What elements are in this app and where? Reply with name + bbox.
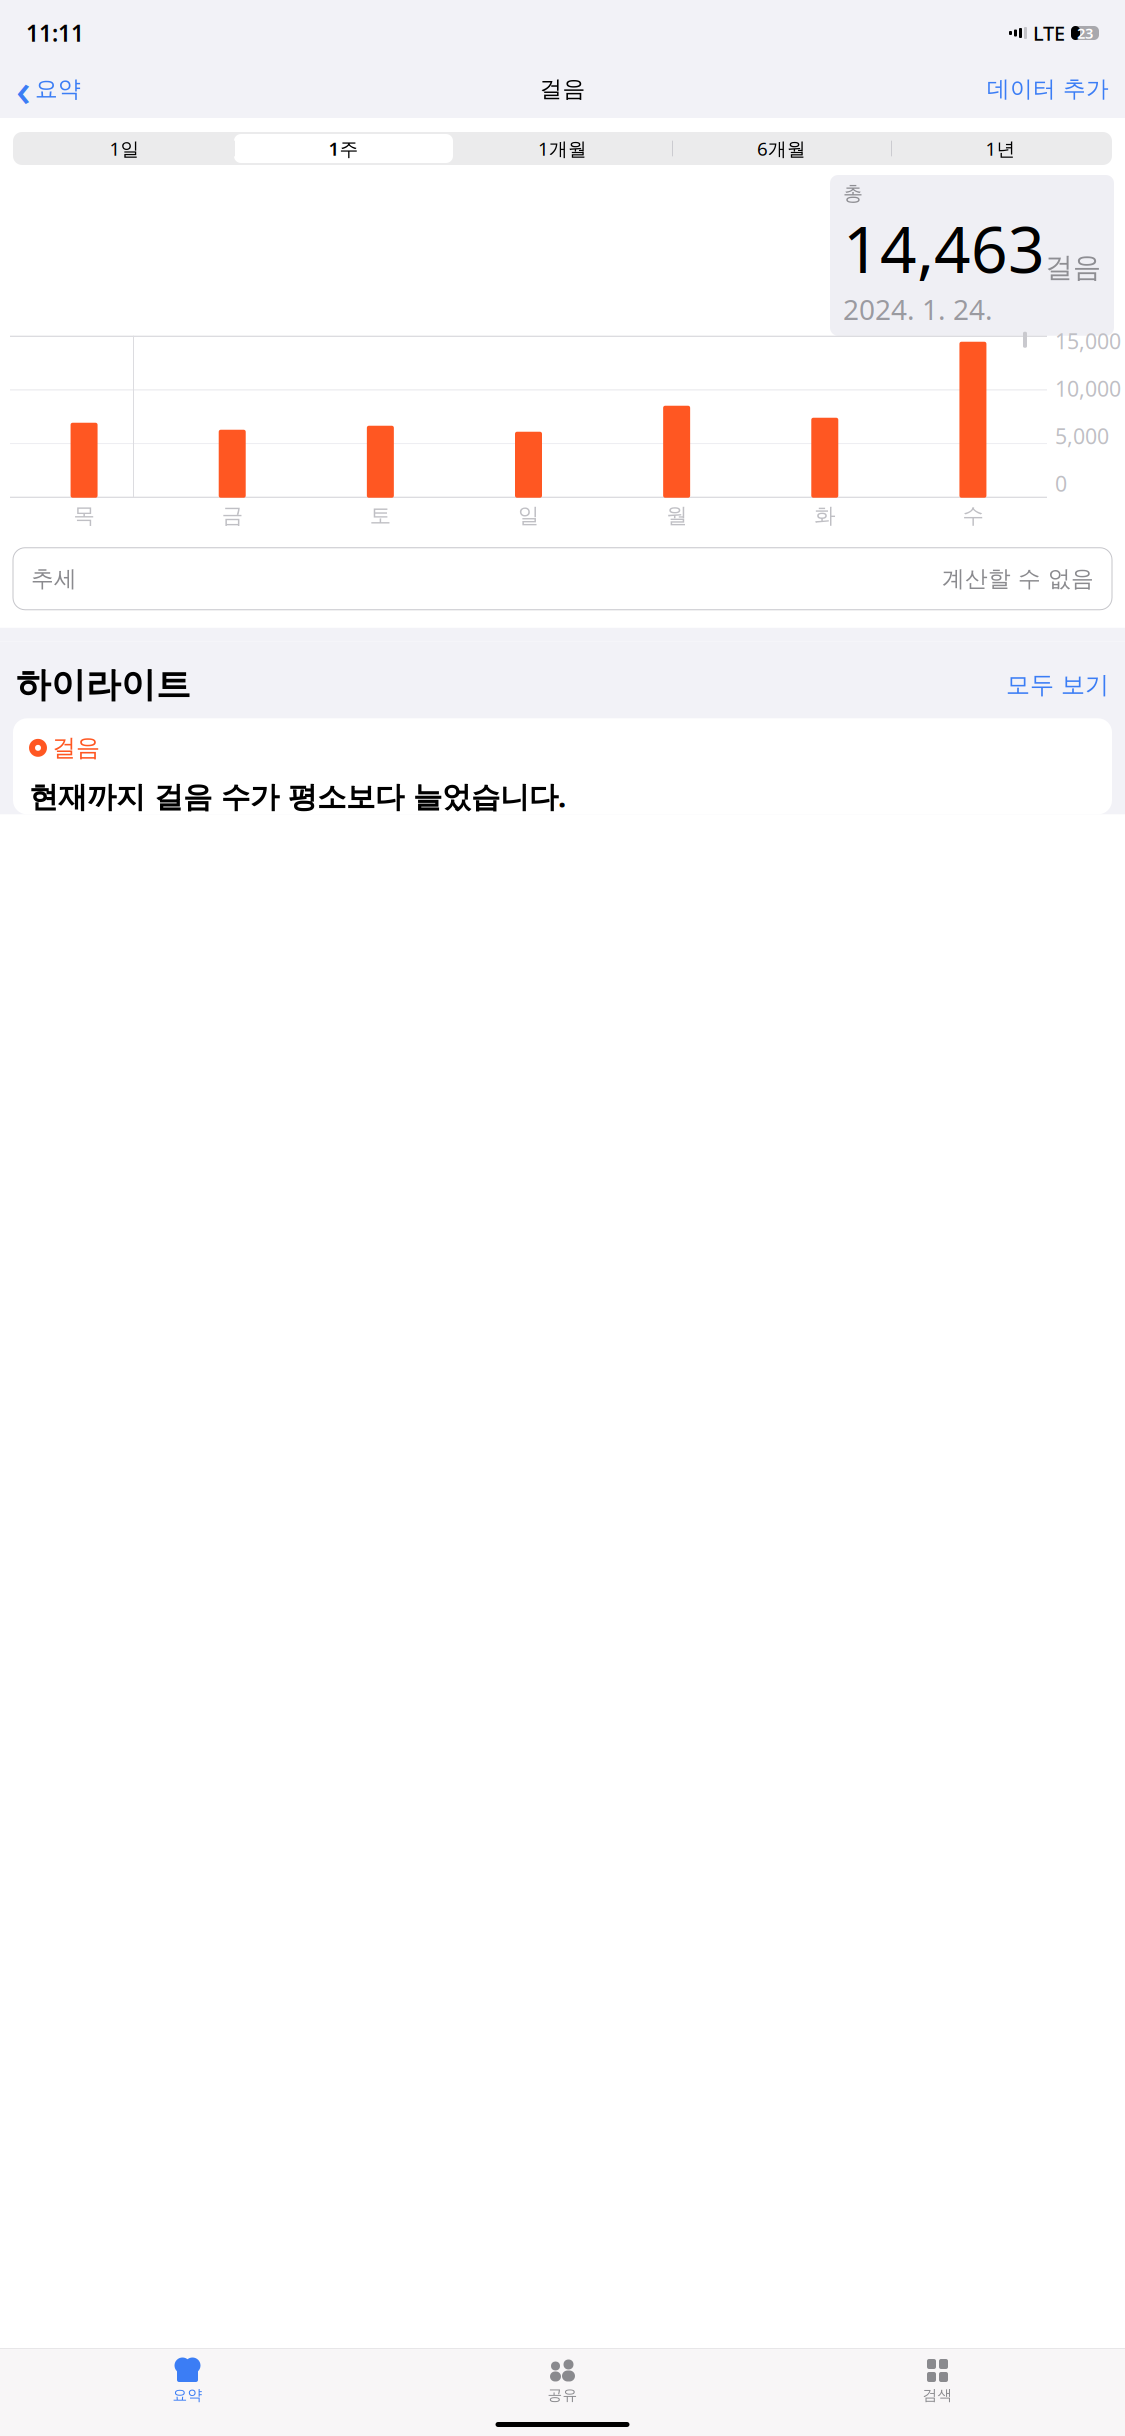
staticText: ‹ [16,59,31,119]
staticText: 1년 [985,136,1015,161]
staticText: 수 [962,503,983,529]
button[interactable]: 데이터 추가 [979,71,1117,107]
staticText: 0 [1055,469,1067,498]
staticText: 10,000 [1055,374,1121,403]
staticText: 총 [843,181,863,206]
button[interactable]: 검색 [750,2356,1125,2404]
button[interactable]: 1주 [234,134,453,163]
staticText: 화 [814,503,835,529]
staticText: 금 [222,503,243,529]
staticText: 1일 [109,136,139,161]
staticText: 계산할 수 없음 [942,565,1094,593]
staticText: 토 [370,503,391,529]
button[interactable]: 1년 [891,134,1110,163]
staticText: LTE [1033,20,1065,46]
staticText: 걸음 [1045,250,1101,285]
staticText: 검색 [922,2386,952,2404]
staticText: 목 [74,503,95,529]
staticText: 추세 [31,565,77,593]
staticText: 14,463 [843,206,1045,291]
staticText: 월 [666,503,687,529]
button[interactable]: 요약 [0,2356,375,2404]
staticText: 하이라이트 [16,664,191,706]
button[interactable]: 추세 [13,548,1112,610]
staticText: 1주 [328,136,358,161]
staticText: 2024. 1. 24. [843,291,993,328]
button[interactable]: 1개월 [453,134,672,163]
staticText: 걸음 [539,75,585,103]
staticText: 23 [1077,23,1093,43]
button[interactable]: 1일 [15,134,234,163]
staticText: 데이터 추가 [987,75,1109,103]
staticText: 5,000 [1055,422,1109,450]
staticText: 11:11 [26,18,84,48]
staticText: 1개월 [538,136,587,161]
button[interactable]: ‹ [8,55,89,123]
staticText: 걸음 [52,733,100,763]
staticText: 요약 [172,2386,202,2404]
button[interactable]: 공유 [375,2356,750,2404]
staticText: 현재까지 걸음 수가 평소보다 늘었습니다. [29,777,566,816]
staticText: 15,000 [1055,327,1121,355]
staticText: 모두 보기 [1006,670,1109,700]
staticText: 공유 [547,2386,577,2404]
button[interactable]: 6개월 [672,134,891,163]
button[interactable]: 걸음 [13,718,1112,814]
staticText: 6개월 [757,136,806,161]
button[interactable]: 모두 보기 [1006,670,1109,700]
staticText: 일 [518,503,539,529]
staticText: 요약 [35,75,81,103]
